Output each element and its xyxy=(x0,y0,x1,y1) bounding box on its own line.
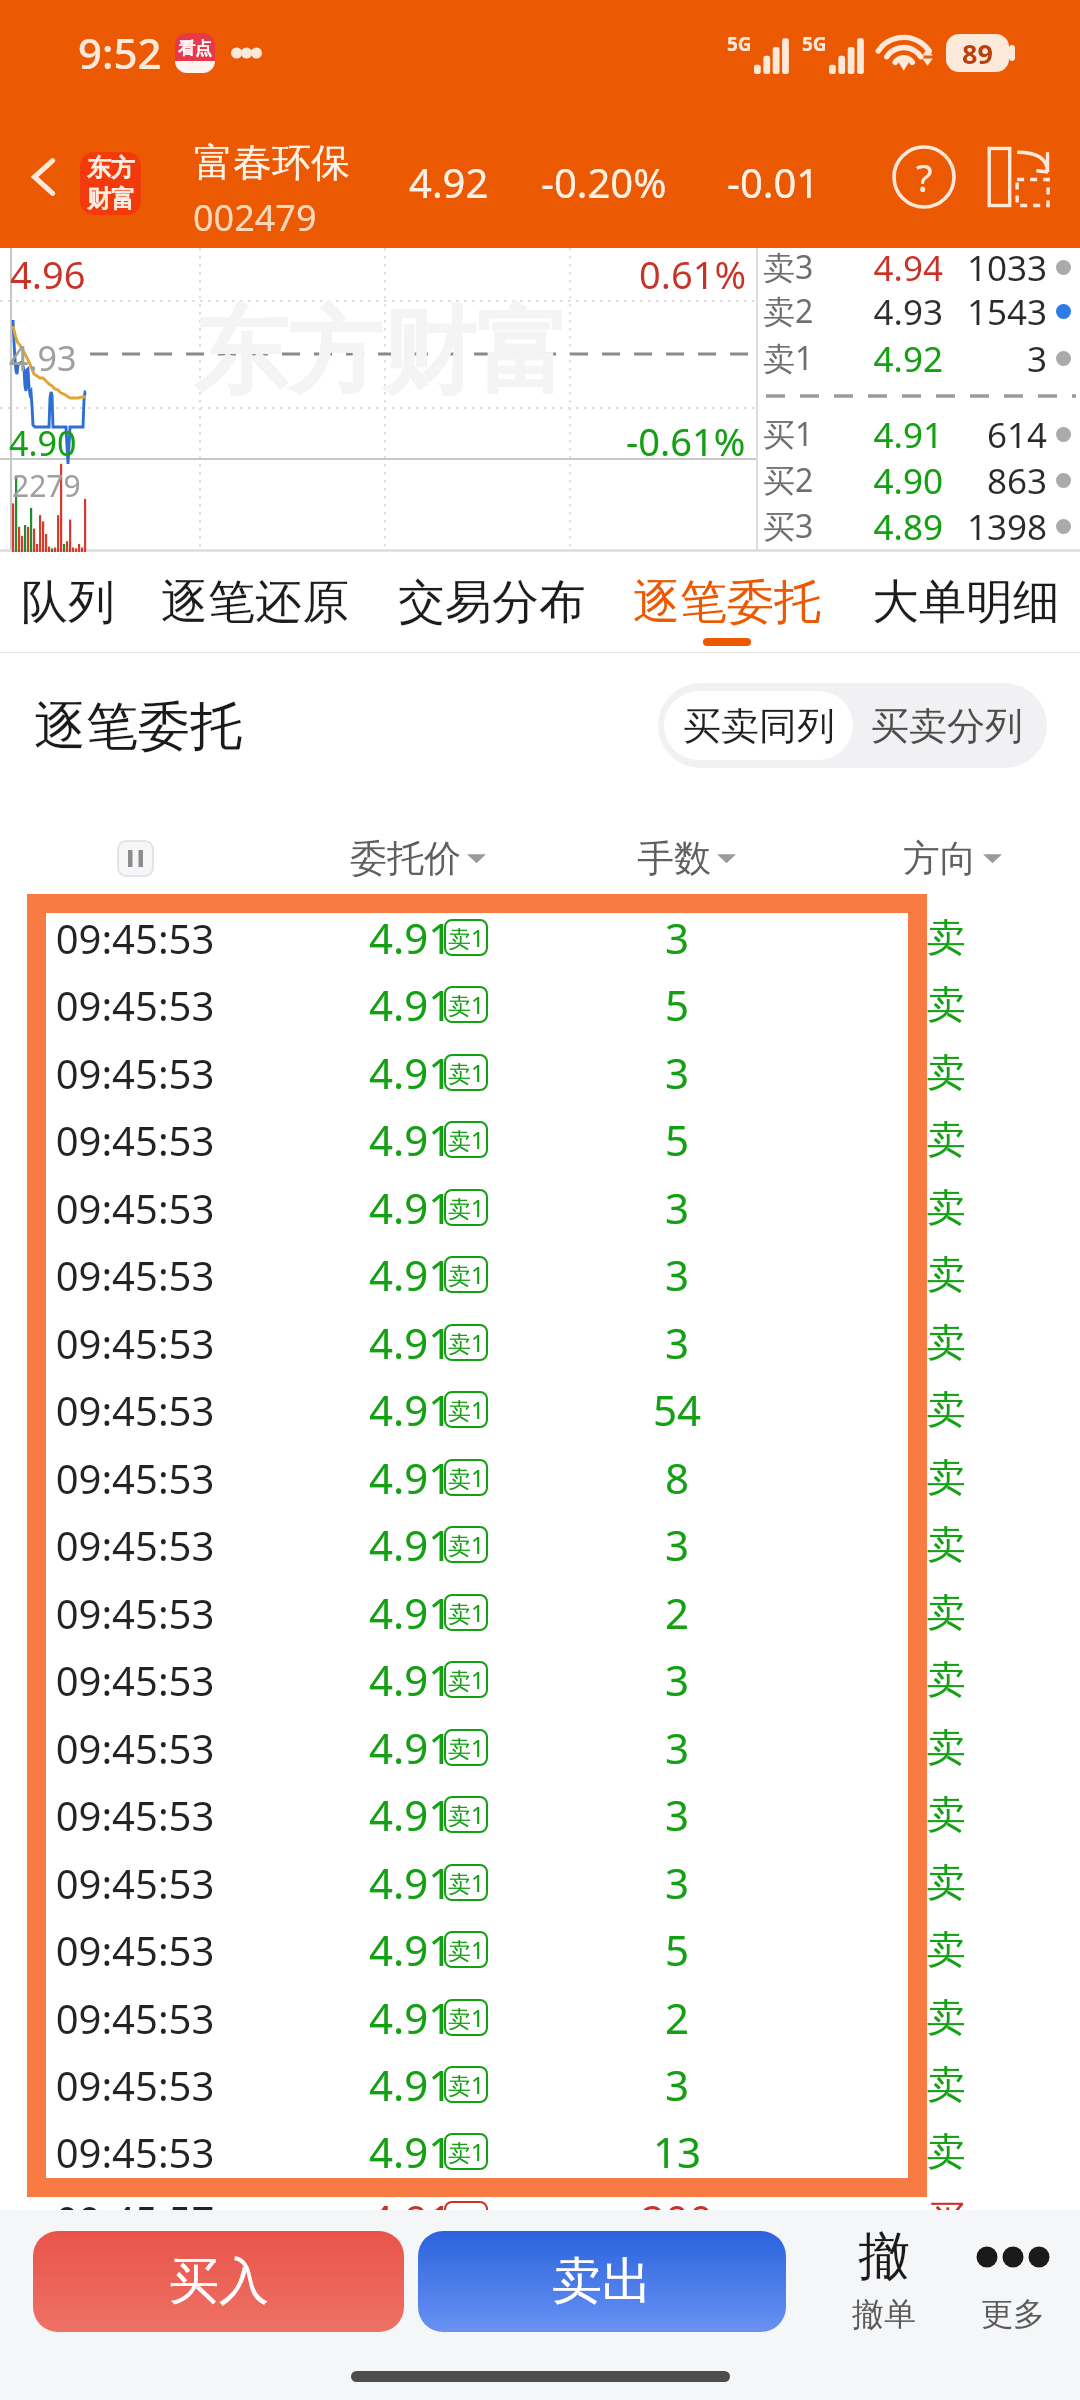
button[interactable]: Help xyxy=(880,105,968,248)
staticText: 3 xyxy=(946,335,1047,381)
button[interactable]: 09:45:53 xyxy=(0,1241,1080,1308)
button[interactable]: 买卖同列 xyxy=(664,691,853,760)
staticText: 逐笔还原 xyxy=(161,573,349,632)
staticText: ? xyxy=(916,151,933,203)
staticText: 卖 xyxy=(846,980,1046,1029)
staticText: 买 xyxy=(846,2195,1046,2244)
staticText: 买3 xyxy=(763,504,814,548)
button[interactable]: 方向 xyxy=(857,835,1047,879)
staticText: 09:45:53 xyxy=(0,1046,275,1100)
button[interactable]: 09:45:53 xyxy=(0,1646,1080,1713)
staticText: 大单明细 xyxy=(872,573,1060,632)
staticText: 卖1 xyxy=(448,2002,485,2033)
button[interactable]: 09:45:53 xyxy=(0,1376,1080,1443)
staticText: 买入 xyxy=(169,2250,269,2313)
button[interactable]: 09:45:53 xyxy=(0,1039,1080,1106)
button[interactable]: 09:45:53 xyxy=(0,1984,1080,2051)
button[interactable]: 买2 xyxy=(756,457,1080,503)
staticText: 卖 xyxy=(846,1183,1046,1232)
button[interactable]: Pause xyxy=(117,840,154,877)
staticText: 卖1 xyxy=(448,1799,485,1830)
staticText: 东方财富 xyxy=(194,293,570,411)
button[interactable]: 卖1 xyxy=(756,335,1080,381)
button[interactable]: 09:45:53 xyxy=(0,1174,1080,1241)
staticText: -0.20% xyxy=(541,155,667,209)
button[interactable]: 买卖分列 xyxy=(852,691,1041,760)
staticText: 卖 xyxy=(846,1588,1046,1637)
button[interactable]: 09:45:53 xyxy=(0,2118,1080,2185)
staticText: 卖1 xyxy=(448,2069,485,2100)
button[interactable]: 09:45:53 xyxy=(0,1849,1080,1916)
staticText: 卖 xyxy=(846,1318,1046,1367)
staticText: 4.91 xyxy=(369,2056,453,2113)
button[interactable]: 09:45:53 xyxy=(0,1511,1080,1578)
staticText: 1543 xyxy=(946,288,1047,334)
staticText: 4.91 xyxy=(369,1179,453,1236)
button[interactable]: 委托价 xyxy=(323,835,513,879)
button[interactable]: 买入 xyxy=(33,2231,404,2332)
button[interactable]: 卖3 xyxy=(756,244,1080,290)
button[interactable]: 09:45:53 xyxy=(0,1444,1080,1511)
button[interactable]: 大单明细 xyxy=(861,552,1071,653)
staticText: 3 xyxy=(542,1651,812,1708)
button[interactable]: 买1 xyxy=(756,411,1080,457)
button[interactable]: 卖2 xyxy=(756,288,1080,334)
staticText: 4.91 xyxy=(369,1921,453,1978)
staticText: 09:45:53 xyxy=(0,1181,275,1235)
staticText: 方向 xyxy=(903,835,977,879)
staticText: 09:45:53 xyxy=(0,978,275,1032)
staticText: 09:45:53 xyxy=(0,1316,275,1370)
staticText: 卖1 xyxy=(763,336,814,380)
button[interactable]: 09:45:53 xyxy=(0,1579,1080,1646)
staticText: 卖1 xyxy=(448,1867,485,1898)
button[interactable]: Back xyxy=(0,105,90,248)
staticText: 队列 xyxy=(21,573,115,632)
staticText: 4.91 xyxy=(816,411,943,457)
staticText: 9:52 xyxy=(78,24,162,81)
button[interactable]: 09:45:57 xyxy=(0,2186,1080,2253)
button[interactable]: 逐笔委托 xyxy=(622,552,832,653)
button[interactable]: Split screen xyxy=(975,105,1063,248)
staticText: 2 xyxy=(542,1584,812,1641)
staticText: 2279 xyxy=(12,465,81,506)
button[interactable]: 队列 xyxy=(3,552,133,653)
staticText: 4.91 xyxy=(369,2191,453,2248)
staticText: 东方 xyxy=(87,153,135,183)
staticText: 4.91 xyxy=(369,2123,453,2180)
staticText: 富春环保 xyxy=(194,138,350,187)
staticText: 4.94 xyxy=(816,244,943,290)
button[interactable]: 09:45:53 xyxy=(0,904,1080,971)
button[interactable]: 09:45:53 xyxy=(0,1781,1080,1848)
staticText: 看点 xyxy=(178,38,212,59)
staticText: 卖1 xyxy=(448,1124,485,1155)
button[interactable]: 09:45:53 xyxy=(0,1309,1080,1376)
staticText: 8 xyxy=(542,1449,812,1506)
button[interactable]: 09:45:53 xyxy=(0,1916,1080,1983)
staticText: 4.91 xyxy=(369,1989,453,2046)
staticText: 3 xyxy=(542,1044,812,1101)
button[interactable]: 逐笔还原 xyxy=(150,552,360,653)
staticText: 卖1 xyxy=(448,1732,485,1763)
button[interactable]: 卖出 xyxy=(418,2231,786,2332)
staticText: 卖 xyxy=(846,1655,1046,1704)
button[interactable]: 09:45:53 xyxy=(0,971,1080,1038)
button[interactable]: 09:45:53 xyxy=(0,1714,1080,1781)
button[interactable]: 撤 xyxy=(824,2224,944,2334)
staticText: 4.91 xyxy=(369,1516,453,1573)
button[interactable]: 交易分布 xyxy=(387,552,597,653)
staticText: 4.92 xyxy=(409,155,489,209)
staticText: 卖 xyxy=(846,1250,1046,1299)
button[interactable]: More xyxy=(953,2224,1073,2334)
staticText: 卖1 xyxy=(448,1192,485,1223)
staticText: 0.61% xyxy=(639,248,746,300)
staticText: 09:45:53 xyxy=(0,1451,275,1505)
button[interactable]: 手数 xyxy=(591,835,781,879)
staticText: 卖出 xyxy=(552,2250,652,2313)
staticText: 卖 xyxy=(846,913,1046,962)
button[interactable]: 09:45:53 xyxy=(0,2051,1080,2118)
staticText: 200 xyxy=(542,2191,812,2248)
button[interactable]: 09:45:53 xyxy=(0,1106,1080,1173)
button[interactable]: 买3 xyxy=(756,503,1080,549)
staticText: 4.91 xyxy=(369,1584,453,1641)
staticText: 3 xyxy=(542,1314,812,1371)
